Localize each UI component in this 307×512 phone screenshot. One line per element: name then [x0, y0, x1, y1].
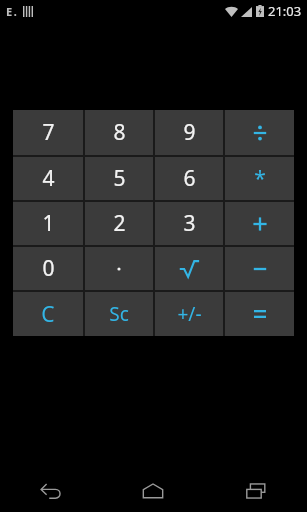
staticText: Sc — [109, 301, 129, 327]
button[interactable]: 6 — [155, 157, 223, 200]
button[interactable]: Recent apps — [224, 470, 288, 512]
button[interactable]: C — [13, 292, 83, 336]
button[interactable]: Home — [121, 470, 185, 512]
button[interactable] — [85, 247, 153, 290]
button[interactable]: 0 — [13, 247, 83, 290]
staticText: +/- — [177, 301, 202, 327]
button[interactable] — [225, 292, 294, 336]
staticText: E — [6, 4, 13, 19]
staticText: 1 — [42, 209, 55, 238]
staticText: 0 — [42, 254, 55, 283]
button[interactable]: 7 — [13, 110, 83, 155]
button[interactable] — [225, 110, 294, 155]
staticText: 3 — [183, 209, 196, 238]
staticText: 5 — [113, 164, 126, 193]
button[interactable]: * — [225, 157, 294, 200]
button[interactable]: +/- — [155, 292, 223, 336]
button[interactable]: 5 — [85, 157, 153, 200]
staticText: 21:03 — [268, 2, 302, 20]
staticText: 7 — [42, 118, 55, 147]
button[interactable]: 3 — [155, 202, 223, 245]
button[interactable]: 8 — [85, 110, 153, 155]
button[interactable]: 1 — [13, 202, 83, 245]
staticText: 4 — [42, 164, 55, 193]
button[interactable]: 4 — [13, 157, 83, 200]
button[interactable]: 9 — [155, 110, 223, 155]
button[interactable] — [225, 247, 294, 290]
staticText: 8 — [113, 118, 126, 147]
staticText: C — [41, 300, 55, 329]
button[interactable]: Back — [19, 470, 83, 512]
button[interactable] — [225, 202, 294, 245]
staticText: * — [254, 164, 266, 193]
staticText: 6 — [183, 164, 196, 193]
staticText: 2 — [113, 209, 126, 238]
button[interactable]: Sc — [85, 292, 153, 336]
button[interactable]: 2 — [85, 202, 153, 245]
staticText: 9 — [183, 118, 196, 147]
button[interactable] — [155, 247, 223, 290]
